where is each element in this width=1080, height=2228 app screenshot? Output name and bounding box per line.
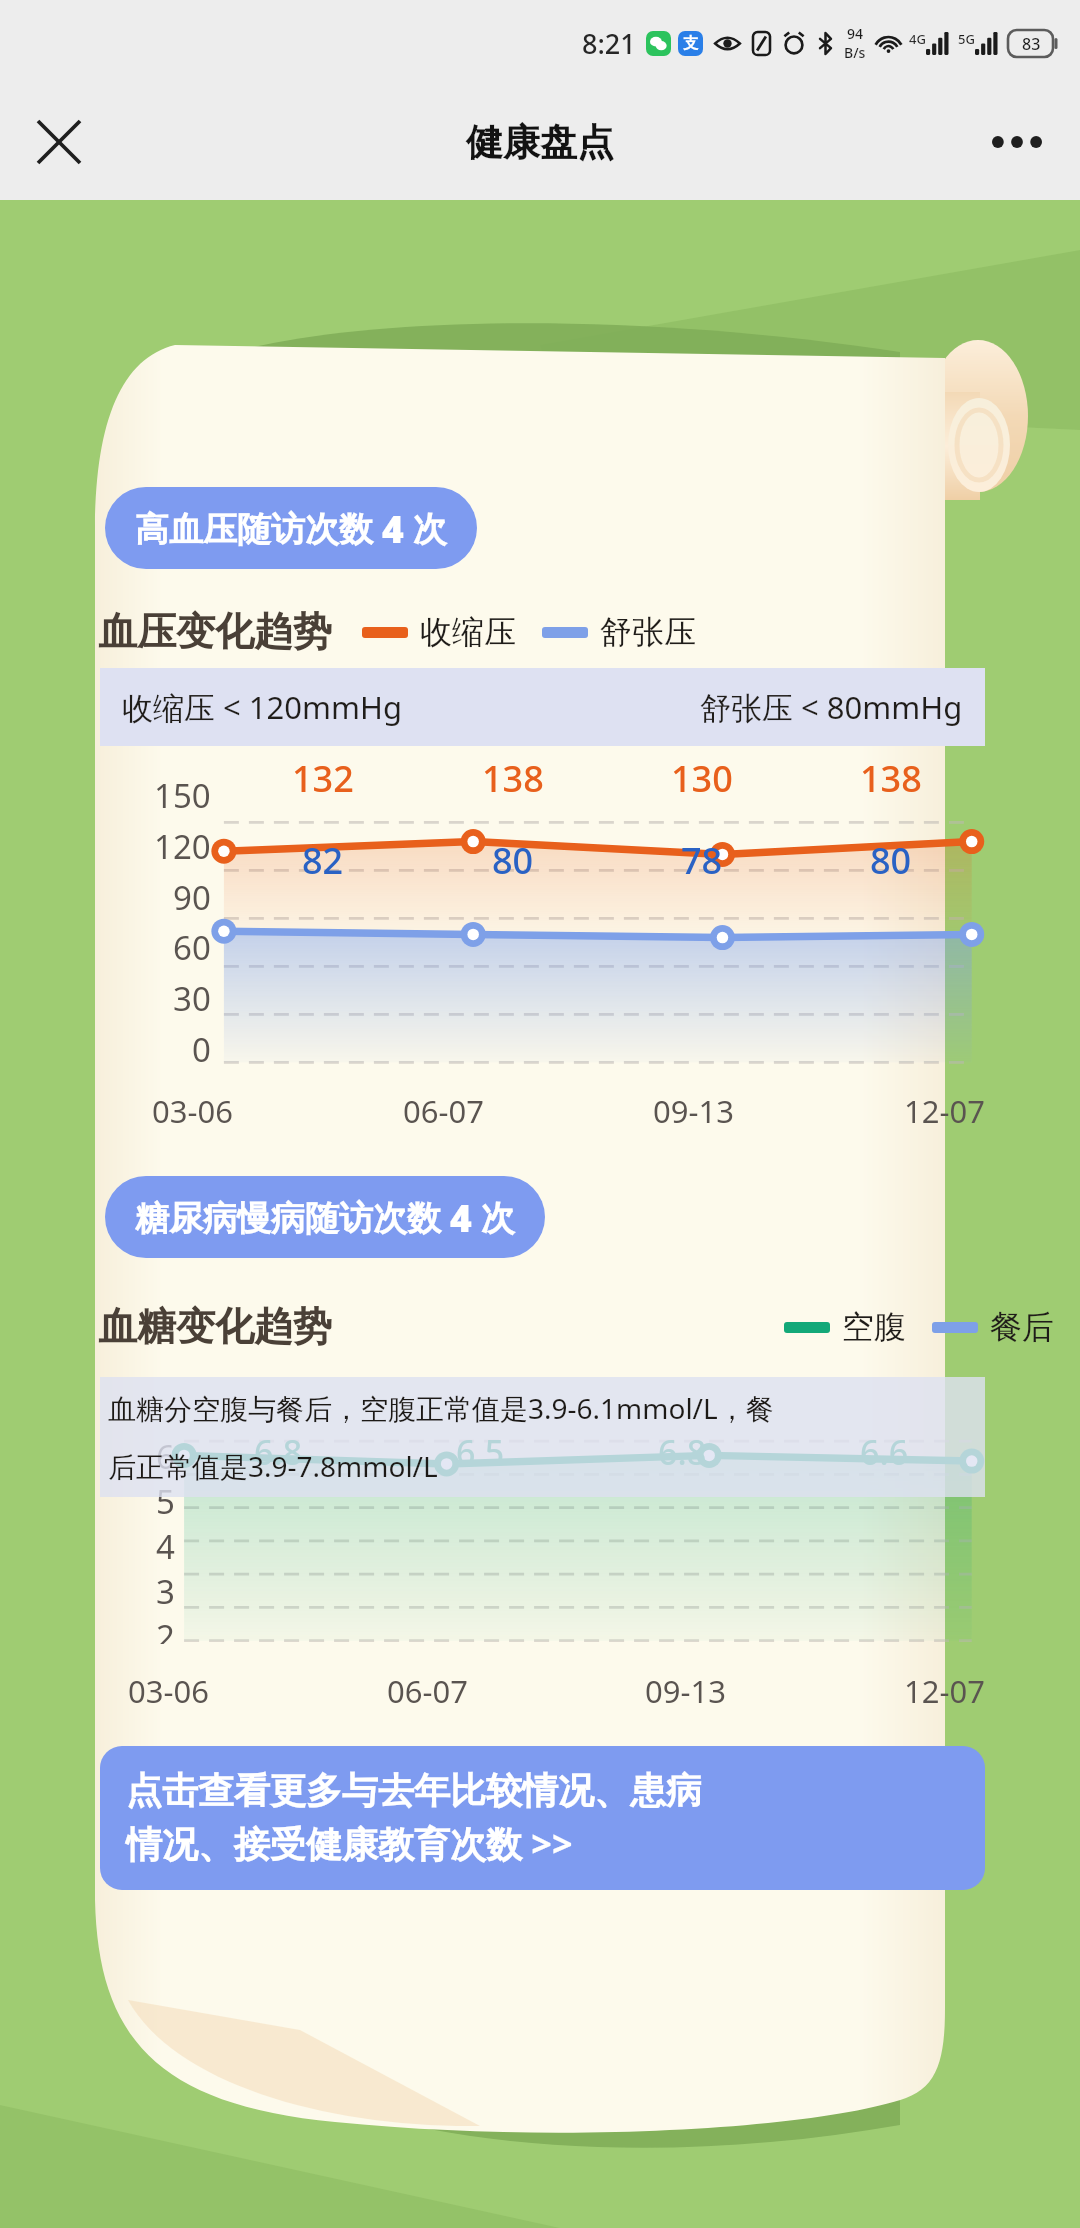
- staticText: 健康盘点: [466, 119, 614, 166]
- staticText: 12-07: [904, 1090, 985, 1132]
- staticText: 4: [156, 1524, 175, 1569]
- staticText: 150: [154, 773, 211, 818]
- staticText: 舒张压: [600, 612, 696, 652]
- staticText: 高血压随访次数: [135, 505, 382, 551]
- staticText: 60: [173, 925, 211, 970]
- staticText: 138: [860, 754, 922, 803]
- staticText: 6.5: [456, 1429, 505, 1475]
- staticText: 收缩压: [420, 612, 516, 652]
- staticText: 132: [292, 754, 354, 803]
- staticText: 血压变化趋势: [98, 607, 332, 656]
- staticText: 120: [154, 824, 211, 869]
- staticText: 2: [156, 1614, 175, 1644]
- staticText: 138: [482, 754, 544, 803]
- staticText: 0: [192, 1027, 211, 1072]
- staticText: 8:21: [582, 25, 636, 62]
- staticText: 09-13: [645, 1670, 726, 1712]
- staticText: 后正常值是3.9-7.8mmol/L: [108, 1447, 438, 1485]
- button[interactable]: 糖尿病慢病随访次数: [105, 1176, 545, 1258]
- staticText: 收缩压 < 120mmHg: [122, 686, 403, 728]
- staticText: 支: [683, 34, 698, 53]
- staticText: 6: [156, 1434, 175, 1479]
- staticText: 次: [472, 1194, 515, 1240]
- staticText: 4: [382, 503, 404, 553]
- staticText: 30: [173, 976, 211, 1021]
- staticText: 血糖分空腹与餐后，空腹正常值是3.9-6.1mmol/L，餐: [108, 1389, 774, 1427]
- staticText: 80: [870, 836, 912, 885]
- button[interactable]: More options: [978, 103, 1056, 181]
- staticText: 点击查看更多与去年比较情况、患病 情况、接受健康教育次数 >>: [126, 1768, 702, 1868]
- staticText: 12-07: [904, 1670, 985, 1712]
- button[interactable]: 高血压随访次数: [105, 487, 477, 569]
- staticText: 6.8: [254, 1429, 303, 1475]
- staticText: 3: [156, 1569, 175, 1614]
- staticText: 78: [681, 836, 723, 885]
- staticText: 83: [1022, 33, 1041, 55]
- staticText: 6.8: [658, 1429, 707, 1475]
- staticText: 94: [847, 24, 864, 43]
- staticText: 血糖变化趋势: [98, 1302, 332, 1351]
- staticText: 03-06: [128, 1670, 209, 1712]
- staticText: 4: [450, 1192, 472, 1242]
- button[interactable]: 点击查看更多与去年比较情况、患病 情况、接受健康教育次数 >>: [100, 1746, 985, 1890]
- staticText: 糖尿病慢病随访次数: [135, 1194, 450, 1240]
- staticText: 5: [156, 1479, 175, 1524]
- button[interactable]: Close: [20, 103, 98, 181]
- staticText: 09-13: [653, 1090, 734, 1132]
- staticText: 6.6: [860, 1429, 909, 1475]
- staticText: 4G: [909, 30, 926, 48]
- staticText: 03-06: [152, 1090, 233, 1132]
- staticText: 130: [671, 754, 733, 803]
- staticText: 空腹: [842, 1307, 906, 1347]
- staticText: 80: [492, 836, 534, 885]
- staticText: 90: [173, 875, 211, 920]
- staticText: 82: [302, 836, 344, 885]
- staticText: 5G: [958, 30, 975, 48]
- staticText: 舒张压 < 80mmHg: [700, 686, 963, 728]
- staticText: 06-07: [387, 1670, 468, 1712]
- staticText: 06-07: [403, 1090, 484, 1132]
- staticText: 餐后: [990, 1307, 1054, 1347]
- staticText: 次: [404, 505, 447, 551]
- staticText: B/s: [844, 43, 866, 62]
